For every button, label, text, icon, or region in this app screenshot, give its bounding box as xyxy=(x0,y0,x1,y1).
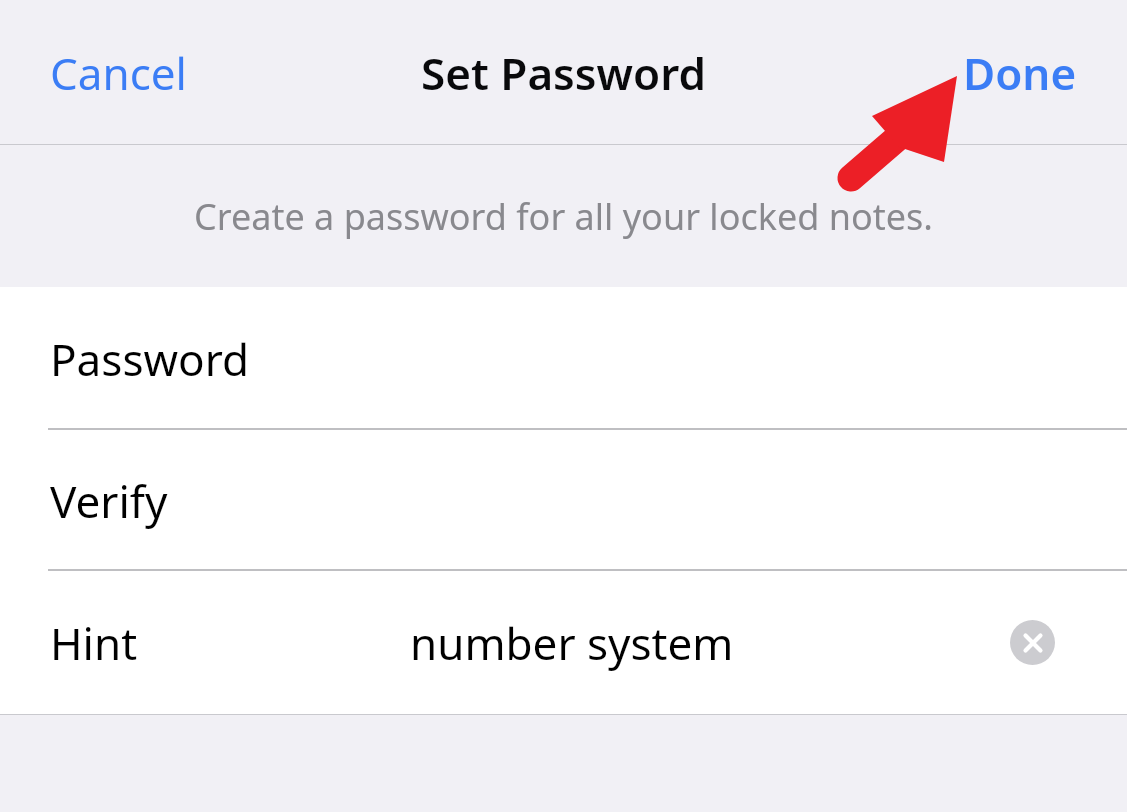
staticText: Hint xyxy=(50,613,138,673)
staticText: Create a password for all your locked no… xyxy=(194,192,933,241)
staticText: Cancel xyxy=(50,43,187,103)
button[interactable]: Cancel xyxy=(50,43,187,103)
button[interactable]: Hint xyxy=(0,571,1127,714)
staticText: Verify xyxy=(50,471,168,531)
staticText: Done xyxy=(963,43,1077,103)
button[interactable]: Verify xyxy=(0,430,1127,571)
staticText: Set Password xyxy=(421,43,706,103)
button[interactable]: Done xyxy=(963,43,1077,103)
button[interactable]: Password xyxy=(0,287,1127,430)
staticText: Password xyxy=(50,329,250,389)
button[interactable]: Clear hint xyxy=(1010,620,1055,665)
staticText: number system xyxy=(410,613,734,673)
